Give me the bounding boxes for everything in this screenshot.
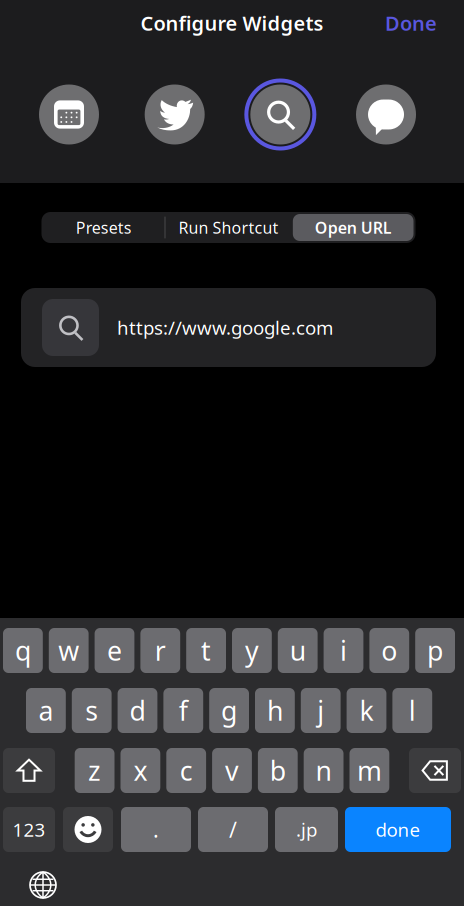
staticText: z <box>88 753 101 788</box>
staticText: y <box>245 633 259 668</box>
button[interactable]: y <box>232 628 272 673</box>
button[interactable]: n <box>304 748 343 793</box>
button[interactable]: m <box>349 748 389 793</box>
button[interactable]: b <box>258 748 298 793</box>
staticText: g <box>221 693 237 728</box>
staticText: Done <box>385 10 437 36</box>
button[interactable]: v <box>212 748 252 793</box>
staticText: u <box>290 633 306 668</box>
staticText: Presets <box>76 217 132 238</box>
staticText: s <box>85 693 98 728</box>
button[interactable]: / <box>198 807 268 852</box>
button[interactable]: .jp <box>275 807 338 852</box>
staticText: m <box>357 753 382 788</box>
staticText: q <box>15 633 31 668</box>
button[interactable]: t <box>186 628 226 673</box>
button[interactable]: Delete <box>409 748 461 793</box>
button[interactable]: i <box>324 628 363 673</box>
staticText: / <box>229 815 237 844</box>
staticText: a <box>38 693 53 728</box>
staticText: p <box>427 633 443 668</box>
button[interactable]: w <box>49 628 89 673</box>
staticText: f <box>179 693 188 728</box>
button[interactable]: d <box>118 688 157 733</box>
staticText: n <box>316 753 332 788</box>
staticText: x <box>133 753 147 788</box>
button[interactable]: x <box>120 748 160 793</box>
button[interactable]: p <box>415 628 455 673</box>
staticText: d <box>129 693 145 728</box>
button[interactable]: u <box>278 628 318 673</box>
button[interactable]: Shift <box>3 748 55 793</box>
button[interactable]: Emoji <box>63 807 113 852</box>
button[interactable]: Run Shortcut <box>166 212 291 243</box>
button[interactable]: Search widget <box>227 72 333 156</box>
button[interactable]: Presets <box>41 212 166 243</box>
staticText: https://www.google.com <box>117 315 333 340</box>
staticText: r <box>155 633 166 668</box>
button[interactable]: Done <box>369 0 464 46</box>
button[interactable]: https://www.google.com <box>21 288 436 367</box>
button[interactable]: k <box>347 688 386 733</box>
staticText: Open URL <box>315 217 392 238</box>
button[interactable]: q <box>3 628 43 673</box>
button[interactable]: done <box>345 807 451 852</box>
staticText: . <box>153 815 159 844</box>
staticText: 123 <box>12 817 45 842</box>
staticText: i <box>340 633 347 668</box>
button[interactable]: g <box>209 688 249 733</box>
staticText: v <box>225 753 239 788</box>
staticText: k <box>359 693 373 728</box>
staticText: h <box>267 693 283 728</box>
button[interactable]: o <box>369 628 409 673</box>
button[interactable]: Twitter widget <box>122 72 227 156</box>
button[interactable]: j <box>301 688 341 733</box>
button[interactable]: r <box>140 628 180 673</box>
staticText: done <box>375 817 420 842</box>
button[interactable]: Messages widget <box>333 72 439 156</box>
button[interactable]: a <box>26 688 66 733</box>
staticText: j <box>317 693 324 728</box>
staticText: Run Shortcut <box>178 217 278 238</box>
button[interactable]: e <box>95 628 134 673</box>
button[interactable]: s <box>72 688 112 733</box>
button[interactable]: f <box>163 688 203 733</box>
button[interactable]: l <box>392 688 432 733</box>
staticText: e <box>107 633 122 668</box>
staticText: w <box>58 633 79 668</box>
button[interactable]: Open URL <box>291 212 415 243</box>
button[interactable]: Calendar widget <box>16 72 122 156</box>
button[interactable]: c <box>166 748 206 793</box>
staticText: l <box>409 693 416 728</box>
button[interactable]: z <box>75 748 114 793</box>
staticText: .jp <box>296 817 317 842</box>
button[interactable]: . <box>121 807 191 852</box>
staticText: c <box>180 753 193 788</box>
staticText: o <box>381 633 397 668</box>
button[interactable]: Switch keyboard <box>22 864 64 906</box>
button[interactable]: h <box>255 688 295 733</box>
staticText: b <box>270 753 286 788</box>
button[interactable]: 123 <box>3 807 55 852</box>
staticText: t <box>201 633 211 668</box>
staticText: Configure Widgets <box>140 10 323 36</box>
